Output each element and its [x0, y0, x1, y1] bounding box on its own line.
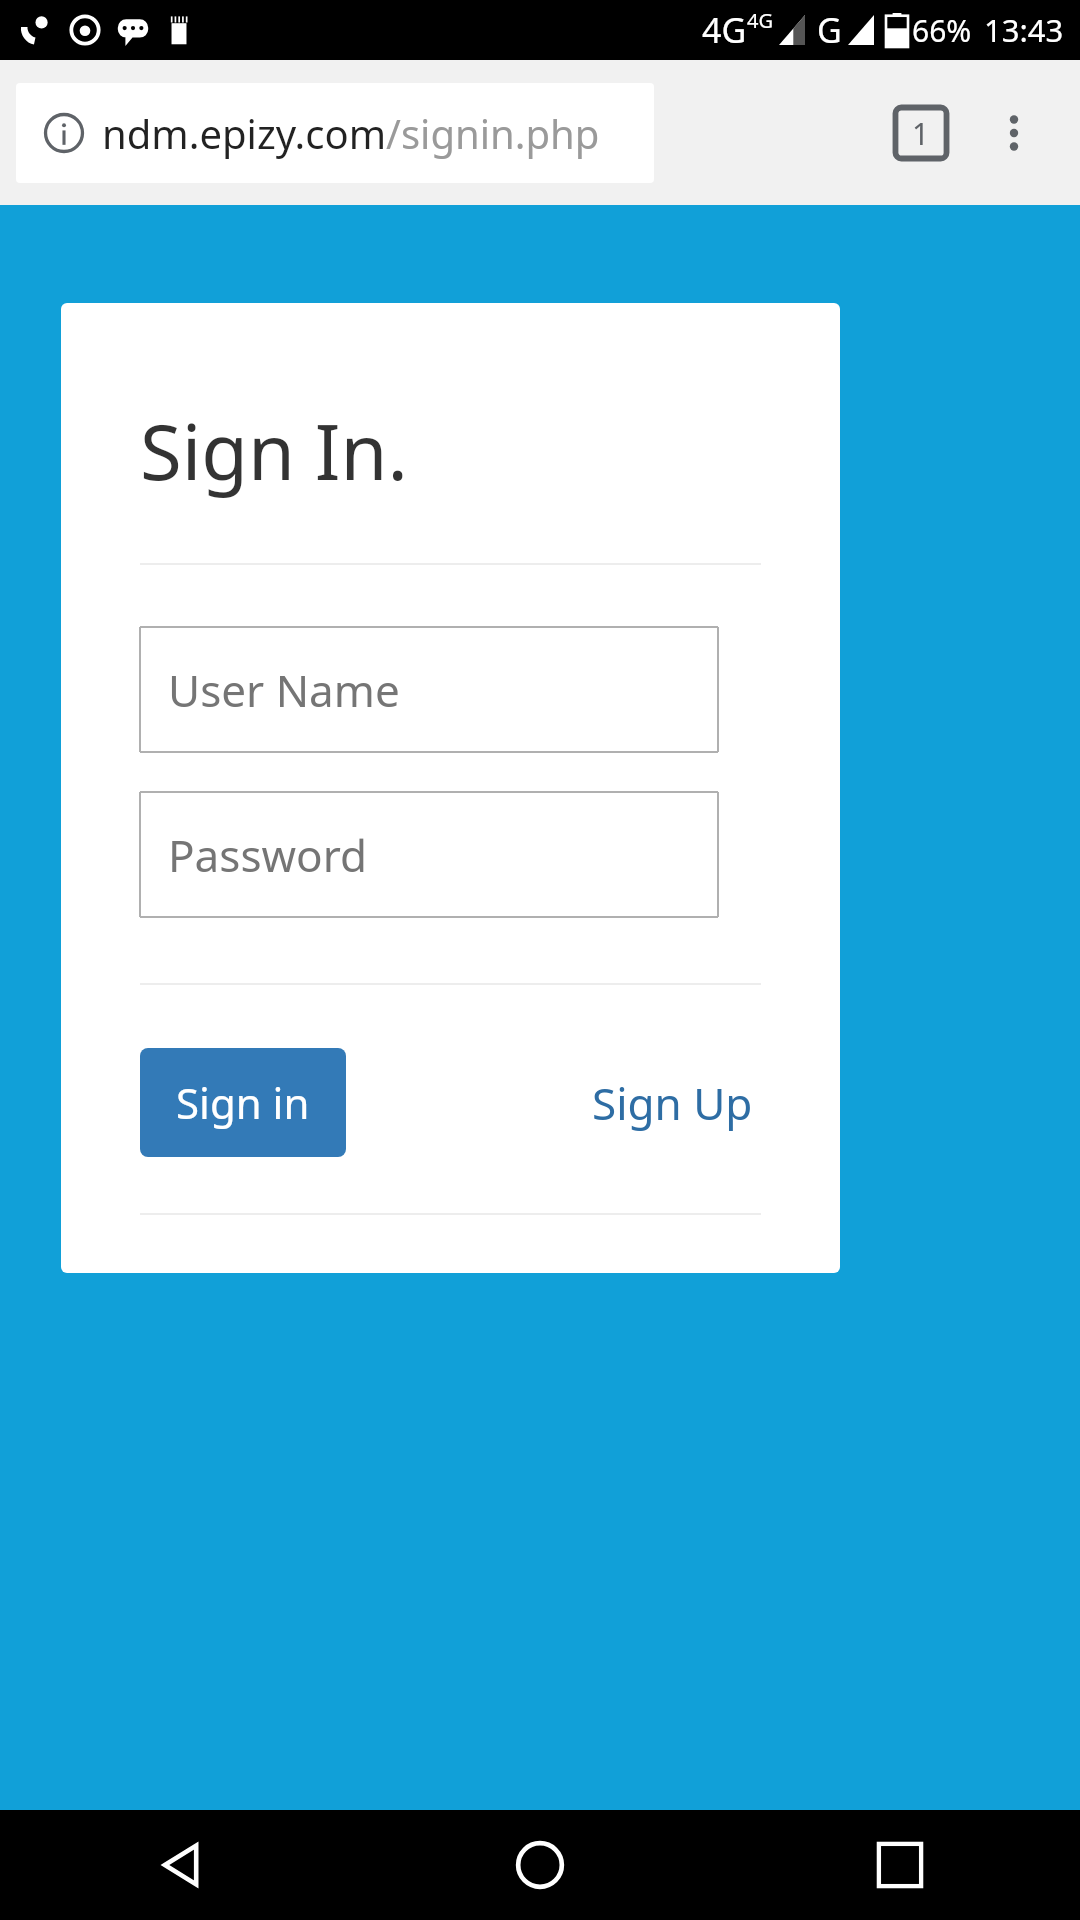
- button[interactable]: Password: [140, 792, 718, 917]
- button[interactable]: Tabs: [892, 104, 950, 162]
- staticText: 13:43: [984, 9, 1064, 51]
- staticText: Sign Up: [592, 1073, 753, 1133]
- staticText: 4G: [702, 7, 747, 53]
- staticText: ndm.epizy.com/signin.php: [102, 106, 600, 160]
- staticText: Sign in: [176, 1074, 310, 1131]
- button[interactable]: User Name: [140, 627, 718, 752]
- staticText: 1: [912, 113, 930, 154]
- button[interactable]: Sign in: [140, 1048, 346, 1157]
- button[interactable]: More options: [986, 105, 1042, 161]
- staticText: 66%: [912, 10, 972, 51]
- staticText: Sign In.: [140, 399, 408, 503]
- button[interactable]: Recent apps: [720, 1810, 1080, 1920]
- button[interactable]: Back: [0, 1810, 360, 1920]
- staticText: User Name: [168, 660, 400, 720]
- staticText: 4G: [747, 7, 773, 34]
- button[interactable]: ndm.epizy.com/signin.php: [16, 83, 654, 183]
- staticText: G: [817, 7, 842, 53]
- button[interactable]: Sign Up: [584, 1065, 761, 1141]
- staticText: Password: [168, 825, 368, 885]
- button[interactable]: Home: [360, 1810, 720, 1920]
